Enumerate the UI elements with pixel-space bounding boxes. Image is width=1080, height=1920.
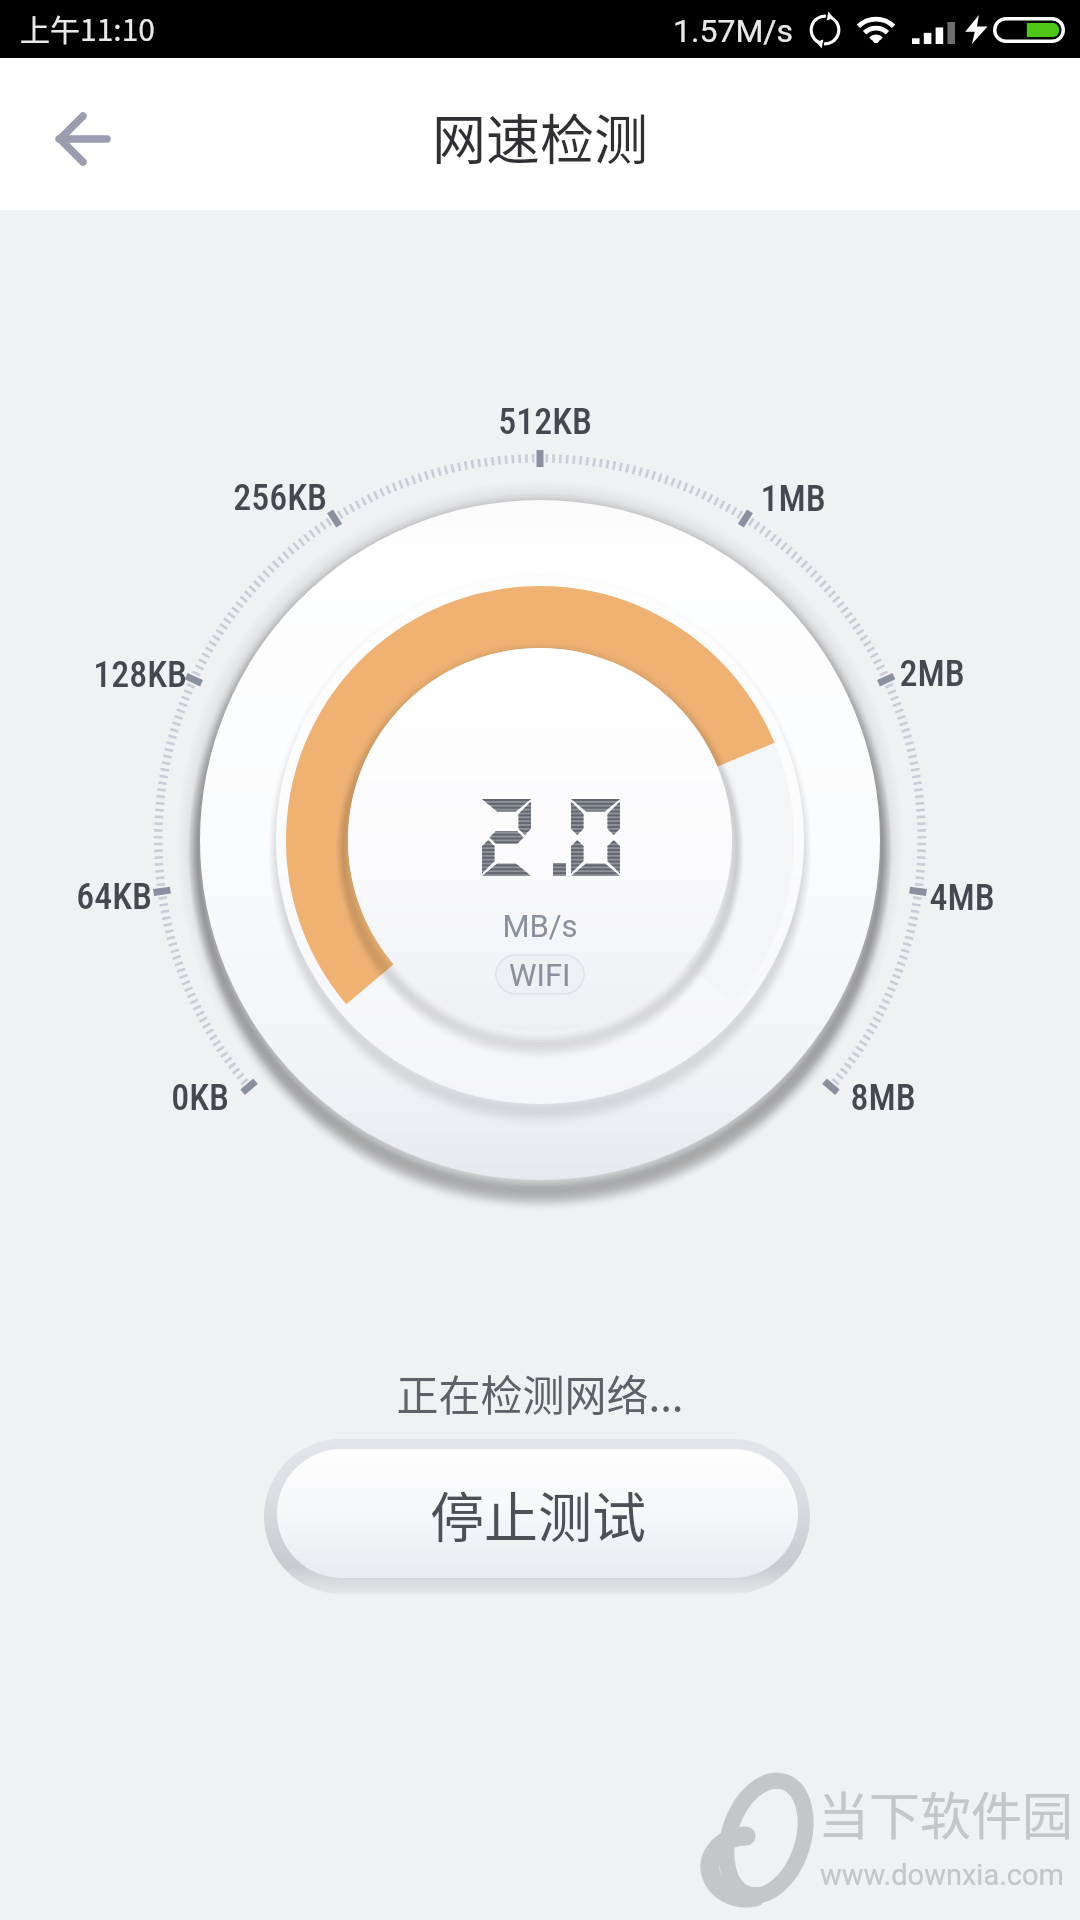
staticText: 正在检测网络... (0, 1362, 1080, 1418)
button[interactable]: 停止测试 (277, 1449, 798, 1578)
staticText: 8MB (733, 1077, 1033, 1119)
staticText: 停止测试 (430, 1475, 646, 1553)
staticText: 128KB (0, 654, 290, 696)
staticText: MB/s (340, 908, 740, 944)
staticText: 上午11:10 (20, 6, 155, 49)
staticText: www.downxia.com (820, 1858, 1064, 1892)
staticText: 256KB (130, 477, 430, 519)
staticText: 2MB (782, 653, 1080, 695)
button[interactable]: Back (26, 94, 120, 174)
staticText: 网速检测 (0, 97, 1080, 175)
staticText: 0KB (50, 1077, 350, 1119)
staticText: 1.57M/s (673, 12, 794, 50)
staticText: WIFI (509, 957, 571, 993)
staticText: 64KB (0, 876, 264, 918)
staticText: 4MB (812, 877, 1080, 919)
staticText: 512KB (395, 401, 695, 443)
staticText: 1MB (643, 478, 943, 520)
staticText: 当下软件园 (818, 1776, 1074, 1850)
